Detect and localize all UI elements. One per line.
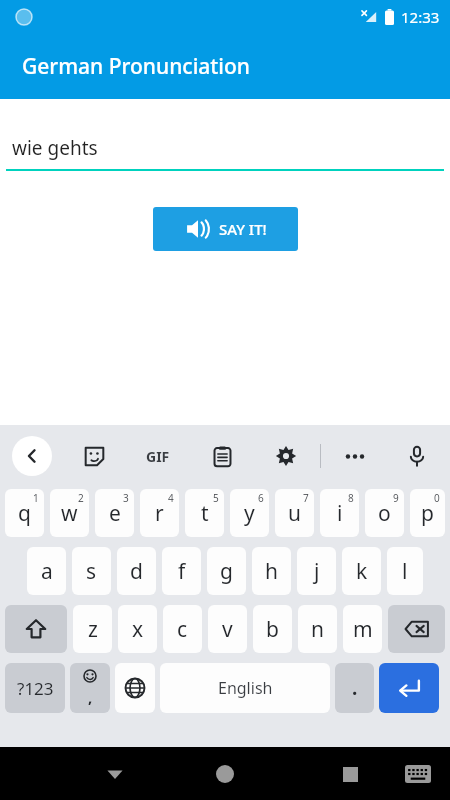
button[interactable]: Voice input: [399, 438, 435, 474]
staticText: h: [265, 557, 278, 586]
staticText: 4: [168, 491, 174, 505]
staticText: 6: [258, 491, 264, 505]
staticText: r: [155, 499, 164, 528]
button[interactable]: Period: [335, 663, 374, 713]
button[interactable]: Emoji and comma: [70, 663, 110, 713]
button[interactable]: f: [162, 547, 201, 595]
button[interactable]: GIF: [140, 438, 176, 474]
staticText: ,: [88, 687, 93, 707]
staticText: s: [86, 557, 97, 586]
button[interactable]: Recent apps: [328, 752, 372, 796]
staticText: 3: [123, 491, 129, 505]
button[interactable]: Sticker: [76, 438, 112, 474]
staticText: c: [177, 615, 188, 644]
button[interactable]: SAY IT!: [153, 207, 298, 251]
staticText: 1: [33, 491, 39, 505]
button[interactable]: Settings: [268, 438, 304, 474]
staticText: g: [220, 557, 233, 586]
staticText: z: [88, 615, 98, 644]
staticText: 5: [213, 491, 219, 505]
staticText: n: [311, 615, 324, 644]
staticText: wie gehts: [12, 135, 98, 161]
button[interactable]: r: [140, 489, 179, 537]
staticText: English: [218, 677, 273, 699]
staticText: v: [222, 615, 233, 644]
staticText: y: [244, 499, 255, 528]
staticText: 9: [393, 491, 399, 505]
staticText: w: [61, 499, 78, 528]
staticText: German Pronunciation: [22, 52, 251, 81]
button[interactable]: j: [297, 547, 336, 595]
button[interactable]: v: [208, 605, 247, 653]
staticText: 8: [348, 491, 354, 505]
button[interactable]: c: [163, 605, 202, 653]
staticText: b: [266, 615, 279, 644]
button[interactable]: g: [207, 547, 246, 595]
staticText: f: [178, 557, 186, 586]
staticText: 7: [303, 491, 309, 505]
staticText: 0: [434, 491, 440, 505]
button[interactable]: h: [252, 547, 291, 595]
staticText: m: [353, 615, 373, 644]
button[interactable]: y: [230, 489, 269, 537]
staticText: d: [130, 557, 143, 586]
staticText: SAY IT!: [219, 219, 267, 239]
button[interactable]: t: [185, 489, 224, 537]
button[interactable]: u: [275, 489, 314, 537]
button[interactable]: d: [117, 547, 156, 595]
button[interactable]: w: [50, 489, 89, 537]
button[interactable]: o: [365, 489, 404, 537]
button[interactable]: m: [343, 605, 382, 653]
staticText: .: [352, 675, 358, 701]
button[interactable]: Symbols: [5, 663, 65, 713]
button[interactable]: p: [410, 489, 445, 537]
staticText: 12:33: [401, 7, 440, 27]
staticText: u: [288, 499, 301, 528]
button[interactable]: n: [298, 605, 337, 653]
button[interactable]: s: [72, 547, 111, 595]
staticText: GIF: [146, 447, 170, 466]
button[interactable]: b: [253, 605, 292, 653]
button[interactable]: Shift: [5, 605, 67, 653]
button[interactable]: Switch keyboard: [396, 752, 440, 796]
button[interactable]: i: [320, 489, 359, 537]
staticText: o: [378, 499, 391, 528]
button[interactable]: z: [73, 605, 112, 653]
button[interactable]: Enter: [379, 663, 439, 713]
button[interactable]: Home: [203, 752, 247, 796]
staticText: ?123: [17, 677, 54, 700]
staticText: p: [421, 499, 434, 528]
button[interactable]: Change language: [115, 663, 155, 713]
button[interactable]: More options: [337, 438, 373, 474]
staticText: l: [402, 557, 408, 586]
staticText: k: [356, 557, 368, 586]
button[interactable]: e: [95, 489, 134, 537]
button[interactable]: l: [387, 547, 423, 595]
button[interactable]: wie gehts: [6, 135, 444, 171]
staticText: q: [18, 499, 31, 528]
button[interactable]: Clipboard: [204, 438, 240, 474]
button[interactable]: Space: [160, 663, 330, 713]
staticText: t: [201, 499, 209, 528]
button[interactable]: x: [118, 605, 157, 653]
staticText: x: [132, 615, 144, 644]
staticText: j: [314, 557, 320, 586]
staticText: e: [109, 499, 121, 528]
button[interactable]: q: [5, 489, 44, 537]
button[interactable]: Back: [12, 436, 52, 476]
button[interactable]: Backspace: [388, 605, 445, 653]
button[interactable]: k: [342, 547, 381, 595]
button[interactable]: Hide keyboard: [93, 752, 137, 796]
staticText: 2: [78, 491, 84, 505]
staticText: i: [337, 499, 343, 528]
button[interactable]: a: [27, 547, 66, 595]
staticText: a: [41, 557, 53, 586]
